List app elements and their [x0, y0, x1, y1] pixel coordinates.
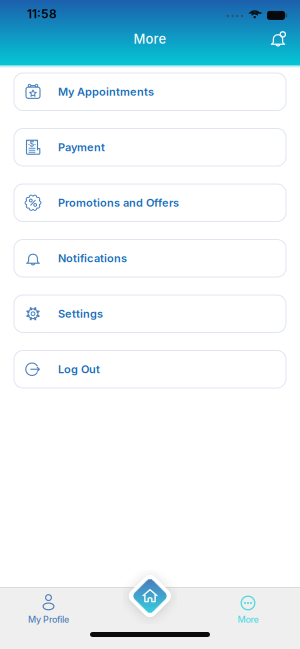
- staticText: Notifications: [58, 252, 127, 265]
- button[interactable]: My Profile: [0, 594, 97, 625]
- staticText: My Appointments: [58, 85, 154, 98]
- staticText: Settings: [58, 307, 103, 320]
- button[interactable]: Notifications: [13, 239, 286, 277]
- staticText: Log Out: [58, 363, 100, 376]
- button[interactable]: [126, 575, 174, 617]
- staticText: $: [29, 140, 34, 148]
- staticText: Promotions and Offers: [58, 196, 179, 209]
- staticText: 11:58: [27, 7, 57, 21]
- staticText: Payment: [58, 141, 105, 154]
- button[interactable]: Settings: [13, 294, 286, 333]
- staticText: More: [133, 31, 166, 47]
- staticText: My Profile: [28, 614, 69, 625]
- button[interactable]: $: [13, 128, 286, 166]
- staticText: More: [237, 614, 258, 625]
- button[interactable]: Log Out: [13, 350, 286, 388]
- button[interactable]: Promotions and Offers: [13, 183, 286, 222]
- button[interactable]: My Appointments: [13, 72, 286, 111]
- button[interactable]: More: [196, 594, 300, 625]
- button[interactable]: [267, 28, 288, 49]
